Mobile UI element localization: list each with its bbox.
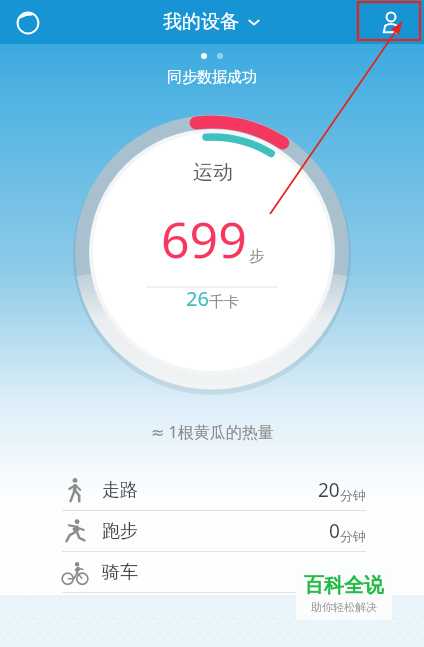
staticText: 分钟 xyxy=(340,528,366,544)
button[interactable]: 骑车 xyxy=(0,552,424,592)
staticText: 百科全说 xyxy=(304,573,384,598)
button[interactable]: 跑步 xyxy=(0,511,424,551)
button[interactable]: 我的设备 xyxy=(163,10,261,34)
button[interactable]: Device xyxy=(12,6,44,38)
staticText: 我的设备 xyxy=(163,10,239,34)
staticText: 0 xyxy=(329,518,340,544)
staticText: 骑车 xyxy=(102,561,138,584)
staticText: 助你轻松解决 xyxy=(311,600,377,614)
staticText: 699 xyxy=(161,205,247,273)
staticText: 分钟 xyxy=(340,487,366,503)
staticText: 跑步 xyxy=(102,520,138,543)
button[interactable]: 运动 xyxy=(161,160,264,312)
staticText: 走路 xyxy=(102,479,138,502)
staticText: 运动 xyxy=(193,160,233,185)
staticText: 20 xyxy=(318,477,340,503)
staticText: 同步数据成功 xyxy=(167,68,257,87)
button[interactable]: 走路 xyxy=(0,470,424,510)
staticText: 26 xyxy=(186,285,209,312)
button[interactable]: Profile xyxy=(372,3,410,41)
staticText: ≈ 1根黄瓜的热量 xyxy=(151,421,274,443)
staticText: 千卡 xyxy=(209,293,239,312)
staticText: 步 xyxy=(249,247,264,266)
